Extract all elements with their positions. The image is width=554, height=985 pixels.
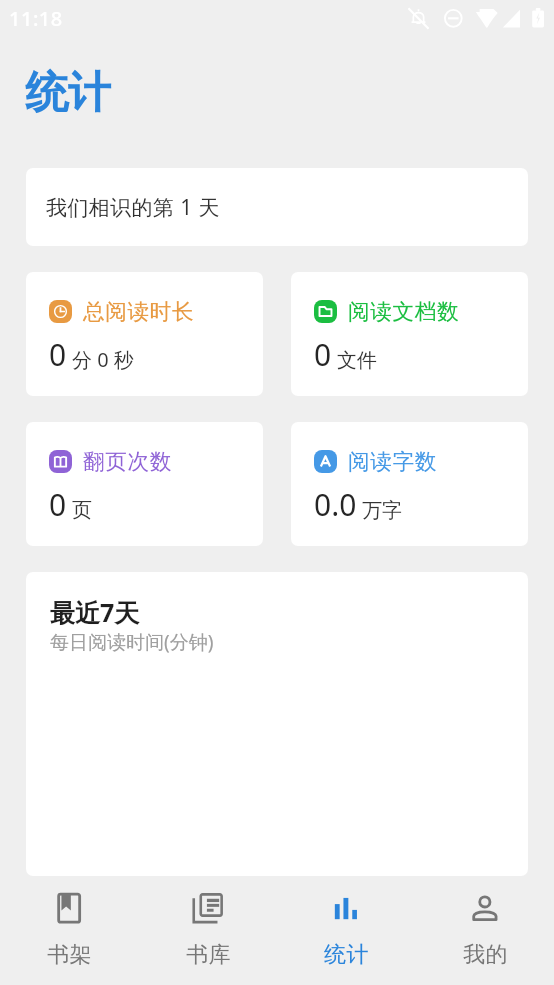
staticText: 翻页次数 <box>83 448 172 475</box>
button[interactable]: 总阅读时长 <box>26 272 263 396</box>
staticText: 书架 <box>47 941 92 969</box>
staticText: 页 <box>72 498 92 523</box>
button[interactable]: 书架 Bookshelf <box>0 887 138 985</box>
staticText: 最近7天 <box>50 595 140 629</box>
button[interactable]: 书库 Library <box>139 887 277 985</box>
staticText: 文件 <box>337 348 377 373</box>
staticText: 11:18 <box>9 5 63 32</box>
staticText: 统计 <box>324 941 369 969</box>
staticText: 0 <box>49 334 67 375</box>
staticText: 每日阅读时间(分钟) <box>50 629 214 655</box>
staticText: 0.0 <box>314 484 357 525</box>
button[interactable]: 我的 Profile <box>416 887 554 985</box>
staticText: 万字 <box>362 498 402 523</box>
staticText: 0 <box>49 484 67 525</box>
staticText: 我的 <box>463 941 508 969</box>
button[interactable]: 统计 Statistics <box>277 887 415 985</box>
staticText: 统计 <box>25 66 111 120</box>
staticText: 书库 <box>186 941 231 969</box>
staticText: 分 0 秒 <box>72 346 134 373</box>
staticText: 0 <box>314 334 332 375</box>
staticText: 总阅读时长 <box>83 298 195 325</box>
staticText: 我们相识的第 1 天 <box>46 193 220 222</box>
button[interactable]: 我们相识的第 1 天 <box>26 168 528 246</box>
staticText: 阅读文档数 <box>348 298 460 325</box>
button[interactable]: 阅读字数 <box>291 422 528 546</box>
staticText: 阅读字数 <box>348 448 437 475</box>
button[interactable]: 阅读文档数 <box>291 272 528 396</box>
button[interactable]: 翻页次数 <box>26 422 263 546</box>
